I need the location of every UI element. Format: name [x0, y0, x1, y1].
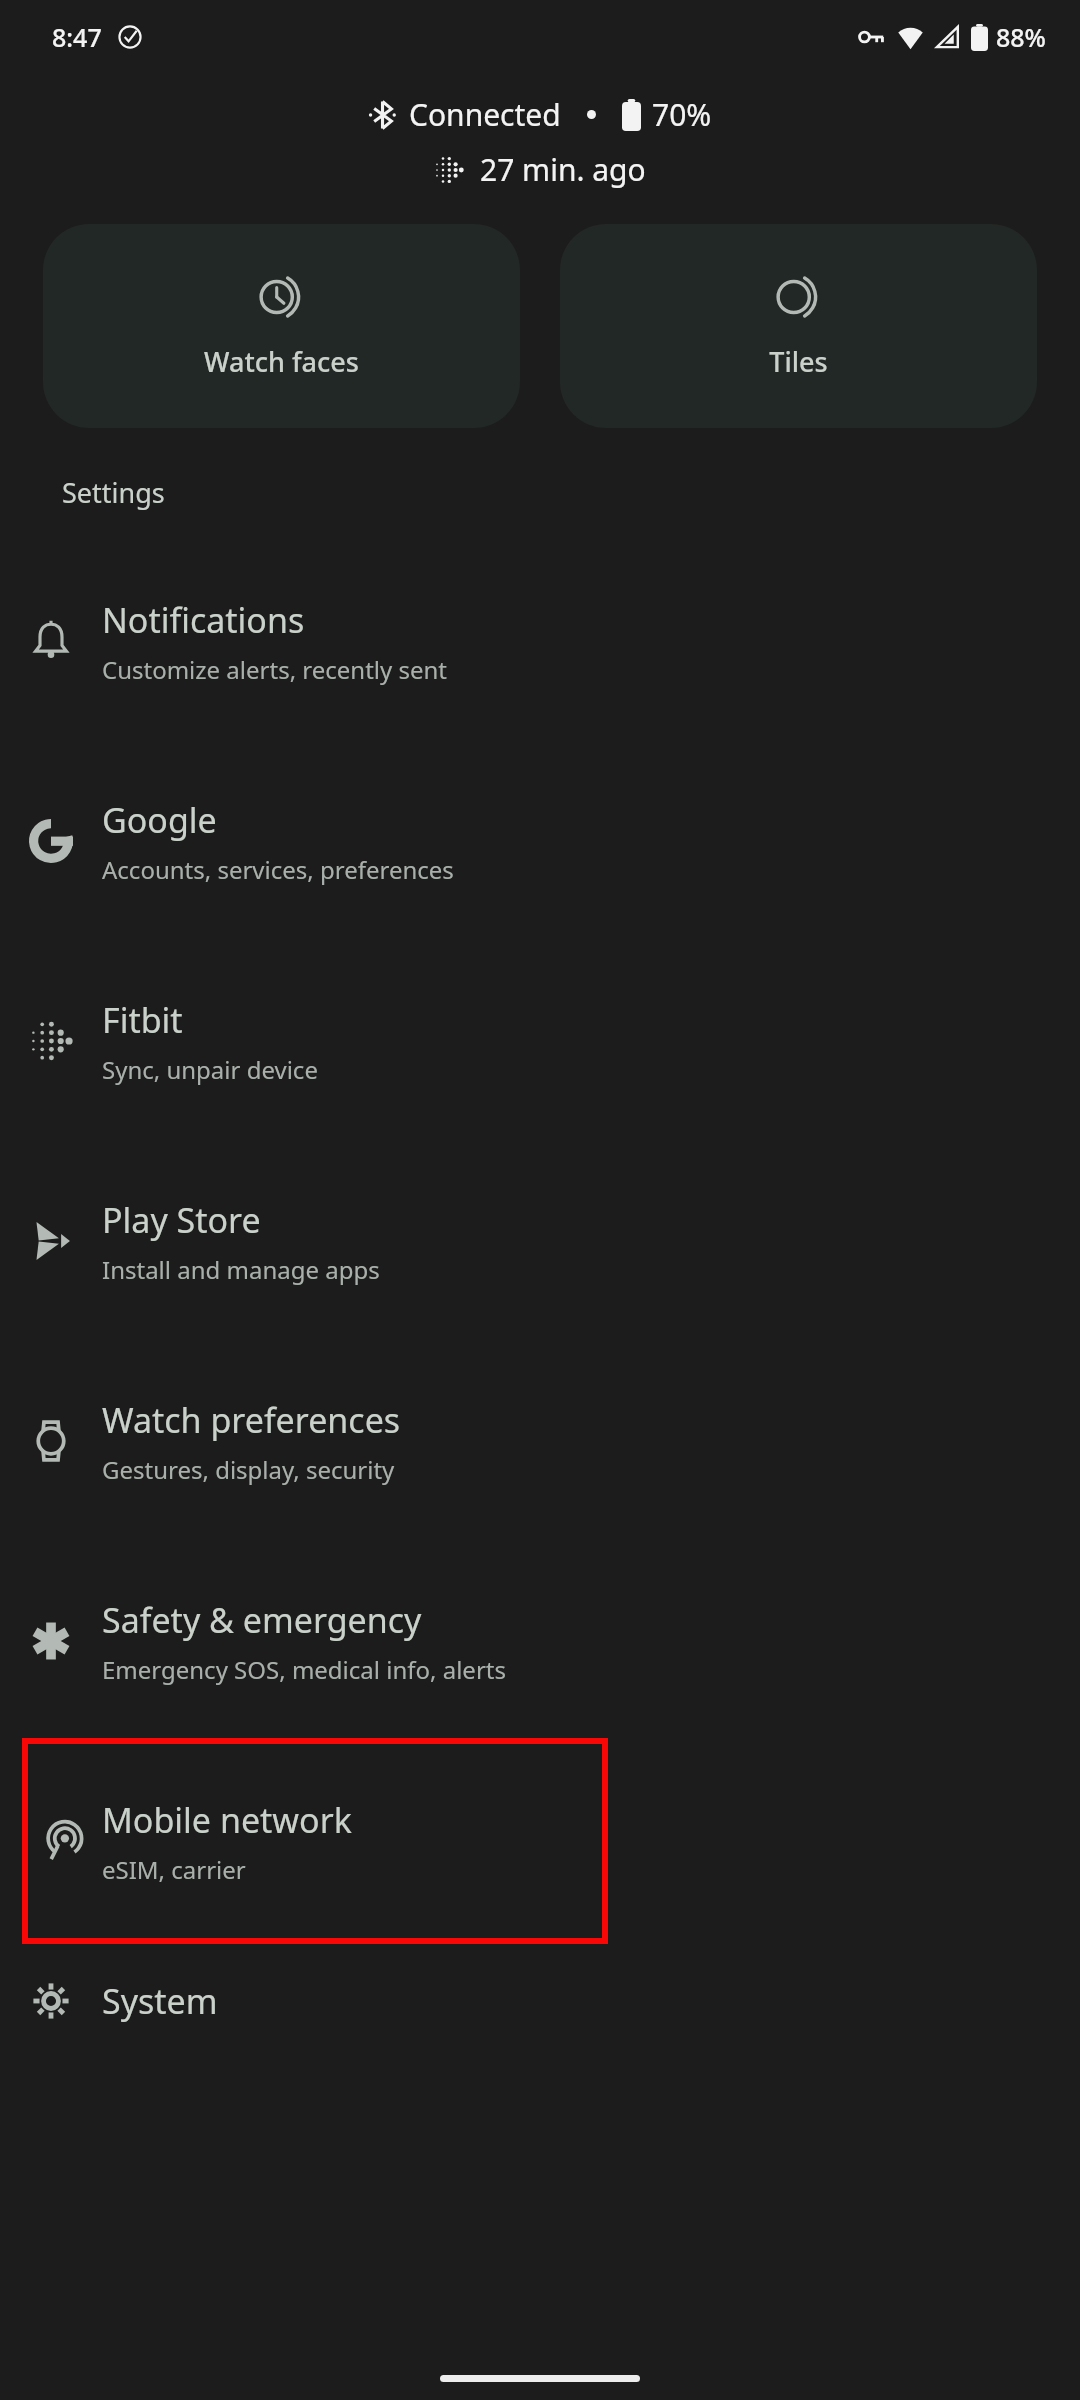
button[interactable]: Mobile network — [25, 1741, 605, 1941]
other: Mobile network — [42, 1819, 86, 1863]
other: Fitbit — [29, 1019, 73, 1063]
button[interactable]: Tiles — [560, 224, 1037, 428]
staticText: Watch faces — [204, 343, 359, 380]
other: Safety — [29, 1619, 73, 1663]
staticText: Sync, unpair device — [102, 1053, 318, 1086]
button[interactable]: Play Store — [0, 1141, 1080, 1341]
staticText: Fitbit — [102, 997, 183, 1043]
staticText: Google — [102, 797, 217, 843]
other: System — [29, 1979, 73, 2023]
button[interactable]: System — [0, 1941, 1080, 2061]
other: Google — [29, 819, 73, 863]
staticText: Install and manage apps — [102, 1253, 380, 1286]
staticText: 8:47 — [52, 20, 102, 54]
staticText: Watch preferences — [102, 1397, 401, 1443]
staticText: 27 min. ago — [480, 149, 646, 190]
staticText: System — [102, 1978, 218, 2024]
button[interactable]: Watch faces — [43, 224, 520, 428]
staticText: Notifications — [102, 597, 305, 643]
staticText: Accounts, services, preferences — [102, 853, 454, 886]
button[interactable]: Fitbit — [0, 941, 1080, 1141]
staticText: eSIM, carrier — [102, 1853, 246, 1886]
button[interactable]: Google — [0, 741, 1080, 941]
other: Watch — [29, 1419, 73, 1463]
staticText: Connected — [409, 94, 561, 135]
staticText: Emergency SOS, medical info, alerts — [102, 1653, 506, 1686]
staticText: Mobile network — [102, 1797, 352, 1843]
other: Play Store — [29, 1219, 73, 1263]
button[interactable]: Notifications — [0, 541, 1080, 741]
other: Notifications — [29, 619, 73, 663]
button[interactable]: Safety — [0, 1541, 1080, 1741]
button[interactable]: Watch — [0, 1341, 1080, 1541]
staticText: Customize alerts, recently sent — [102, 653, 448, 686]
staticText: Tiles — [769, 343, 828, 380]
staticText: Play Store — [102, 1197, 261, 1243]
staticText: Safety & emergency — [102, 1597, 422, 1643]
staticText: 70% — [652, 94, 712, 135]
staticText: Settings — [62, 474, 165, 511]
staticText: 88% — [996, 20, 1046, 54]
staticText: Gestures, display, security — [102, 1453, 395, 1486]
